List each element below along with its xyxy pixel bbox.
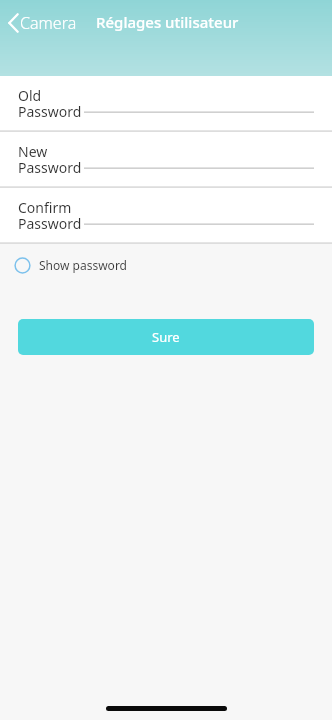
button[interactable]: Show password [0, 244, 332, 286]
button[interactable]: Sure [18, 319, 314, 355]
staticText: Password [18, 158, 82, 177]
button[interactable]: New [0, 132, 332, 188]
staticText: Confirm [18, 198, 72, 217]
button[interactable]: Back to Camera [5, 9, 80, 37]
staticText: Password [18, 214, 82, 233]
button[interactable]: Confirm [0, 188, 332, 244]
staticText: Password [18, 102, 82, 121]
staticText: Show password [39, 257, 127, 273]
staticText: Camera [20, 12, 77, 34]
staticText: Sure [152, 328, 180, 346]
staticText: Réglages utilisateur [96, 12, 239, 32]
staticText: New [18, 142, 48, 161]
staticText: Old [18, 86, 42, 105]
button[interactable]: Old [0, 76, 332, 132]
